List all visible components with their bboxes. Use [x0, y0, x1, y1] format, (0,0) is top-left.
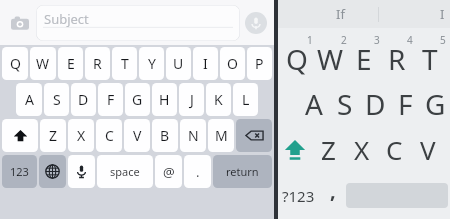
button[interactable]: M — [208, 119, 234, 152]
staticText: Z — [321, 132, 336, 167]
staticText: S — [337, 85, 353, 123]
button[interactable]: D — [360, 82, 390, 126]
button[interactable]: C — [96, 119, 122, 152]
button[interactable]: space — [97, 155, 153, 188]
staticText: 1 — [307, 33, 313, 47]
staticText: Q — [286, 40, 308, 78]
staticText: N — [188, 126, 199, 145]
staticText: R — [93, 54, 102, 73]
button[interactable]: E — [347, 28, 380, 82]
button[interactable]: Voice — [244, 11, 268, 35]
button[interactable]: S — [329, 82, 360, 126]
button[interactable]: Q — [280, 28, 314, 82]
staticText: I — [203, 54, 208, 73]
button[interactable]: U — [166, 47, 191, 80]
staticText: T — [121, 54, 129, 73]
staticText: D — [78, 90, 89, 109]
button[interactable]: Camera — [6, 9, 34, 37]
button[interactable]: Z — [40, 119, 66, 152]
staticText: J — [190, 90, 194, 109]
button[interactable]: Y — [139, 47, 164, 80]
button[interactable]: Q — [2, 47, 28, 80]
staticText: ?123 — [282, 186, 315, 206]
button[interactable]: A — [298, 82, 329, 126]
staticText: Z — [49, 126, 58, 145]
button[interactable]: return — [213, 155, 272, 188]
staticText: S — [53, 90, 61, 109]
button[interactable]: P — [247, 47, 272, 80]
button[interactable]: @ — [155, 155, 182, 188]
button[interactable]: Shift — [2, 119, 38, 152]
button[interactable]: Switch keyboard — [39, 155, 66, 188]
staticText: X — [354, 132, 370, 167]
button[interactable]: G — [420, 82, 450, 126]
button[interactable]: I — [440, 5, 445, 23]
button[interactable]: A — [16, 83, 42, 116]
button[interactable]: N — [180, 119, 206, 152]
staticText: U — [173, 54, 184, 73]
staticText: M — [215, 126, 228, 145]
button[interactable]: R — [380, 28, 413, 82]
button[interactable]: If — [336, 5, 345, 23]
button[interactable]: R — [85, 47, 110, 80]
button[interactable]: W — [314, 28, 347, 82]
button[interactable]: T — [112, 47, 137, 80]
button[interactable]: E — [58, 47, 83, 80]
staticText: return — [226, 164, 259, 179]
button[interactable]: L — [233, 83, 258, 116]
staticText: E — [67, 54, 75, 73]
staticText: Y — [148, 54, 156, 73]
staticText: W — [36, 54, 50, 73]
button[interactable]: I — [193, 47, 218, 80]
staticText: P — [255, 54, 264, 73]
button[interactable]: W — [30, 47, 56, 80]
staticText: X — [77, 126, 86, 145]
button[interactable]: ?123 — [278, 172, 319, 219]
button[interactable]: D — [71, 83, 96, 116]
button[interactable]: F — [390, 82, 420, 126]
staticText: F — [107, 90, 115, 109]
staticText: 123 — [10, 164, 29, 179]
button[interactable]: C — [378, 126, 411, 172]
staticText: R — [388, 40, 406, 78]
button[interactable]: V — [411, 126, 444, 172]
staticText: F — [398, 85, 413, 123]
button[interactable]: Shift — [278, 126, 312, 172]
button[interactable]: H — [152, 83, 177, 116]
button[interactable]: X — [345, 126, 378, 172]
button[interactable]: B — [152, 119, 178, 152]
button[interactable]: 123 — [2, 155, 37, 188]
staticText: B — [160, 126, 170, 145]
staticText: D — [365, 85, 386, 123]
staticText: G — [425, 85, 446, 123]
staticText: L — [242, 90, 250, 109]
button[interactable]: F — [98, 83, 123, 116]
button[interactable]: V — [124, 119, 150, 152]
button[interactable]: Backspace — [236, 119, 272, 152]
button[interactable]: Z — [312, 126, 345, 172]
staticText: 4 — [407, 33, 413, 47]
staticText: 2 — [341, 33, 347, 47]
button[interactable]: Subject — [36, 5, 240, 41]
button[interactable]: T — [413, 28, 446, 82]
staticText: Q — [10, 54, 21, 73]
button[interactable]: O — [220, 47, 245, 80]
button[interactable]: S — [44, 83, 69, 116]
staticText: C — [386, 132, 403, 167]
button[interactable]: , — [319, 172, 346, 219]
button[interactable]: . — [184, 155, 211, 188]
staticText: W — [317, 40, 344, 78]
staticText: K — [214, 90, 223, 109]
staticText: C — [105, 126, 114, 145]
staticText: V — [420, 132, 436, 167]
button[interactable]: J — [179, 83, 204, 116]
button[interactable]: G — [125, 83, 150, 116]
staticText: E — [356, 40, 372, 78]
staticText: V — [133, 126, 142, 145]
staticText: Subject — [44, 10, 89, 28]
button[interactable]: K — [206, 83, 231, 116]
staticText: , — [330, 177, 336, 204]
button[interactable]: Dictate — [68, 155, 95, 188]
button[interactable]: X — [68, 119, 94, 152]
